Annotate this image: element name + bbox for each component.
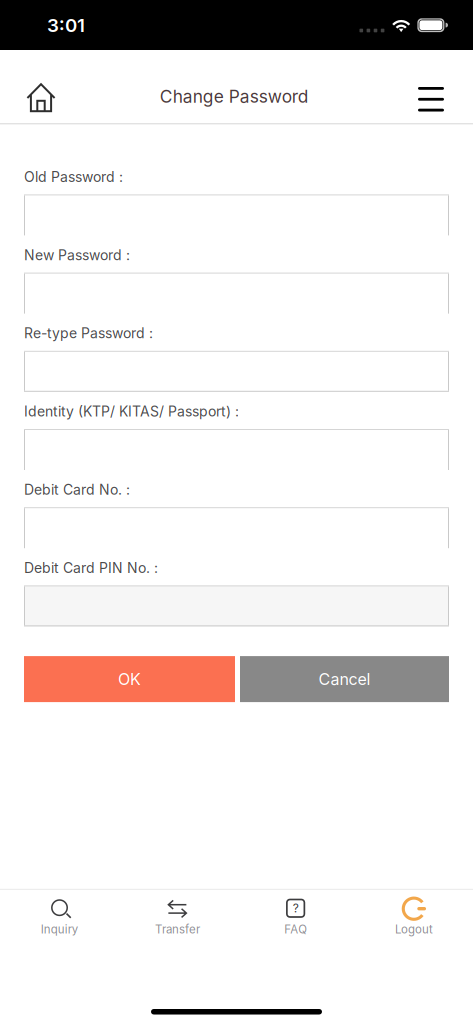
staticText: 3:01 bbox=[47, 14, 85, 36]
staticText: New Password : bbox=[24, 247, 130, 263]
staticText: FAQ bbox=[284, 922, 307, 936]
staticText: Debit Card No. : bbox=[24, 481, 130, 498]
staticText: Inquiry bbox=[41, 922, 78, 936]
button[interactable]: Logout bbox=[355, 890, 473, 948]
staticText: Logout bbox=[395, 922, 433, 936]
staticText: Old Password : bbox=[24, 168, 123, 185]
button[interactable]: ? bbox=[236, 890, 355, 948]
button[interactable]: Transfer bbox=[118, 890, 236, 948]
staticText: Change Password bbox=[160, 86, 309, 107]
staticText: Transfer bbox=[155, 922, 200, 936]
staticText: Debit Card PIN No. : bbox=[24, 559, 158, 576]
staticText: Re-type Password : bbox=[24, 325, 153, 342]
staticText: ? bbox=[293, 901, 299, 915]
staticText: Cancel bbox=[318, 669, 370, 689]
staticText: OK bbox=[118, 669, 141, 689]
button[interactable]: OK bbox=[24, 656, 235, 702]
staticText: Identity (KTP/ KITAS/ Passport) : bbox=[24, 403, 239, 420]
button[interactable]: Inquiry bbox=[0, 890, 118, 948]
button[interactable]: Cancel bbox=[240, 656, 449, 702]
button[interactable]: Menu bbox=[402, 50, 460, 123]
button[interactable]: Home bbox=[12, 50, 70, 123]
